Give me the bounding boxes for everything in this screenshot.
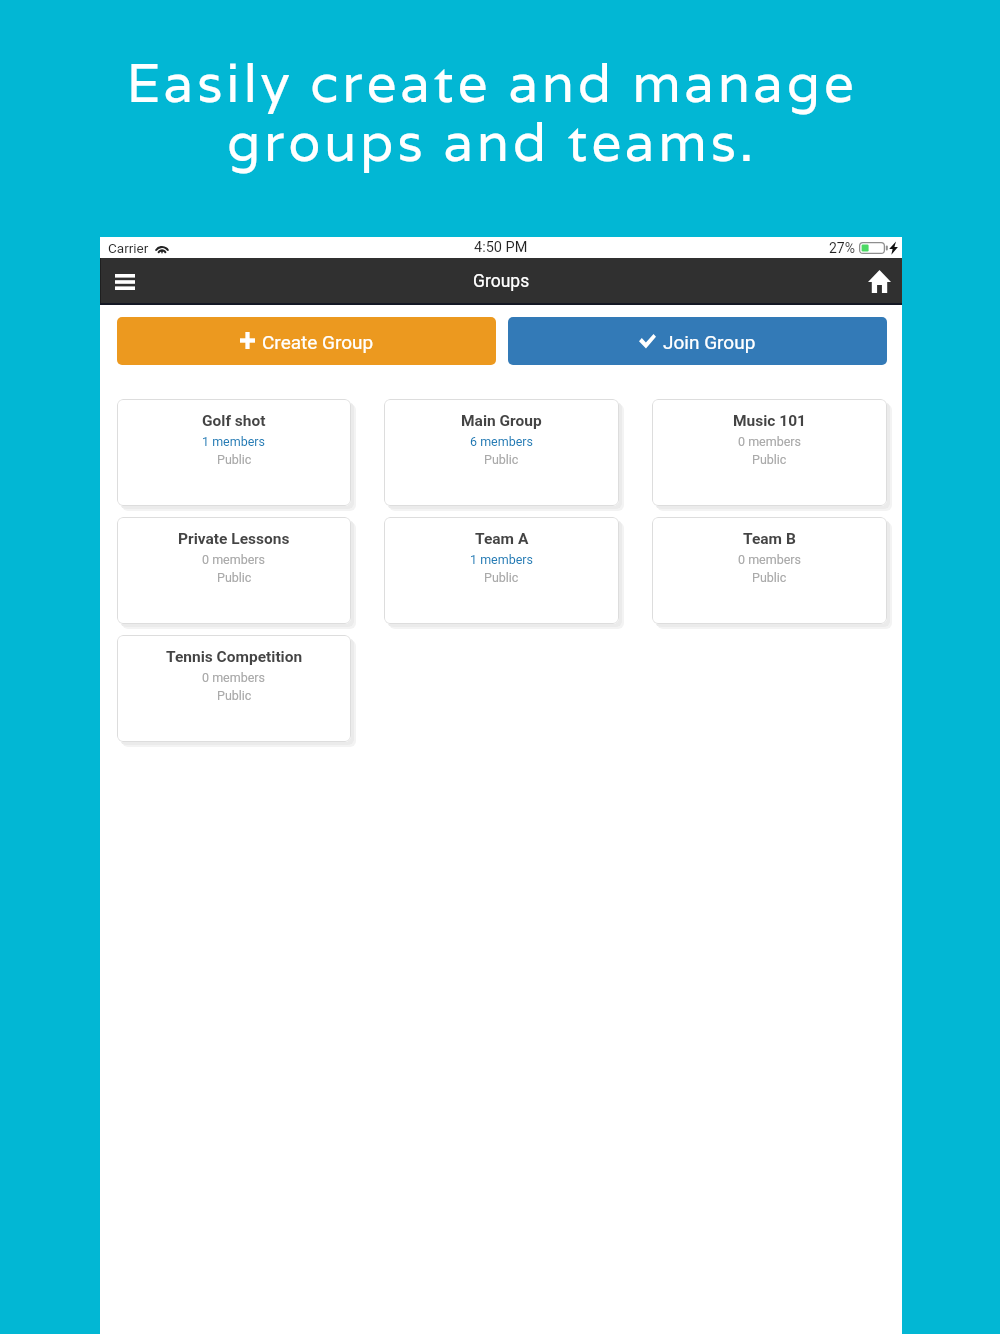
staticText: 4:50 PM bbox=[474, 239, 528, 256]
button[interactable]: Join Group bbox=[508, 317, 887, 365]
staticText: Golf shot bbox=[202, 412, 266, 430]
staticText: 27% bbox=[829, 240, 855, 256]
staticText: Team B bbox=[743, 530, 796, 548]
staticText: Carrier bbox=[108, 240, 149, 256]
staticText: Tennis Competition bbox=[166, 648, 303, 666]
staticText: 1 members bbox=[470, 552, 534, 567]
button[interactable]: Create Group bbox=[117, 317, 496, 365]
staticText: 0 members bbox=[738, 434, 802, 449]
staticText: Team A bbox=[475, 530, 529, 548]
staticText: Public bbox=[752, 570, 787, 585]
staticText: Public bbox=[484, 570, 519, 585]
staticText: 6 members bbox=[470, 434, 534, 449]
staticText: Create Group bbox=[262, 331, 374, 353]
button[interactable]: Team A bbox=[384, 517, 619, 624]
button[interactable]: Menu bbox=[103, 260, 147, 304]
staticText: 0 members bbox=[202, 552, 266, 567]
button[interactable]: Home bbox=[857, 259, 902, 304]
button[interactable]: Private Lessons bbox=[117, 517, 351, 624]
button[interactable]: Tennis Competition bbox=[117, 635, 351, 742]
button[interactable]: Team B bbox=[652, 517, 887, 624]
staticText: 0 members bbox=[738, 552, 802, 567]
staticText: Private Lessons bbox=[178, 530, 290, 548]
staticText: Public bbox=[484, 452, 519, 467]
staticText: Main Group bbox=[461, 412, 542, 430]
button[interactable]: Music 101 bbox=[652, 399, 887, 506]
button[interactable]: Main Group bbox=[384, 399, 619, 506]
staticText: Music 101 bbox=[733, 412, 806, 430]
staticText: Public bbox=[752, 452, 787, 467]
staticText: Easily create and manage groups and team… bbox=[0, 48, 992, 177]
staticText: Public bbox=[217, 452, 252, 467]
staticText: Public bbox=[217, 570, 252, 585]
button[interactable]: Golf shot bbox=[117, 399, 351, 506]
staticText: 0 members bbox=[202, 670, 266, 685]
staticText: Public bbox=[217, 688, 252, 703]
staticText: Join Group bbox=[663, 331, 756, 353]
staticText: Groups bbox=[473, 271, 530, 292]
staticText: 1 members bbox=[202, 434, 266, 449]
